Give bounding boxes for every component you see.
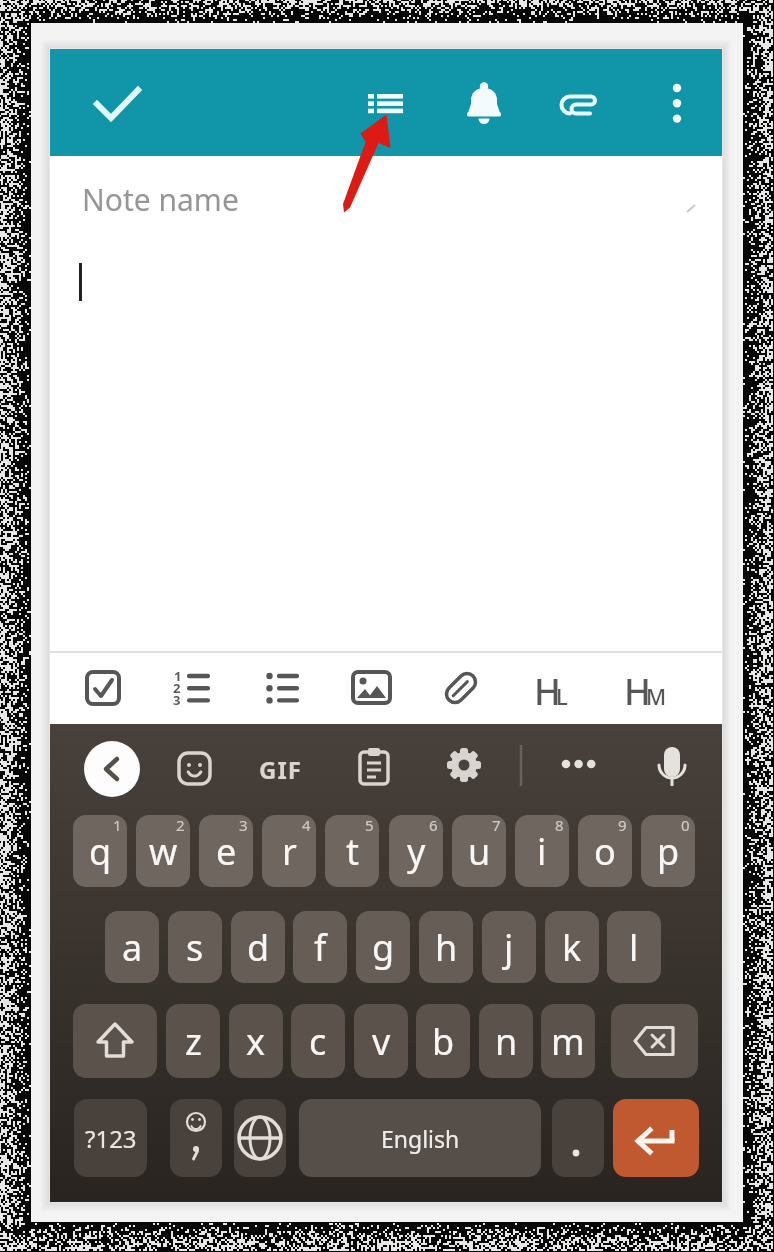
button[interactable]: [611, 1004, 698, 1078]
staticText: 2: [176, 815, 185, 835]
button[interactable]: [73, 1004, 157, 1078]
staticText: H: [534, 667, 561, 716]
staticText: f: [314, 923, 327, 972]
staticText: r: [282, 827, 297, 876]
staticText: h: [435, 923, 458, 972]
staticText: 3: [239, 815, 248, 835]
button[interactable]: w: [136, 815, 190, 887]
button[interactable]: [73, 657, 133, 717]
button[interactable]: j: [482, 911, 536, 983]
button[interactable]: a: [105, 911, 159, 983]
button[interactable]: z: [166, 1004, 220, 1078]
button[interactable]: x: [229, 1004, 283, 1078]
button[interactable]: [253, 740, 309, 796]
staticText: 6: [429, 815, 438, 835]
staticText: p: [657, 827, 680, 876]
staticText: 2: [173, 679, 181, 697]
button[interactable]: [90, 77, 146, 133]
button[interactable]: [644, 740, 700, 796]
button[interactable]: c: [291, 1004, 345, 1078]
button[interactable]: [431, 657, 491, 717]
staticText: s: [186, 923, 204, 972]
staticText: y: [407, 827, 426, 876]
button[interactable]: v: [354, 1004, 408, 1078]
button[interactable]: b: [416, 1004, 470, 1078]
staticText: k: [562, 923, 582, 972]
staticText: g: [372, 923, 395, 972]
button[interactable]: [456, 76, 512, 132]
staticText: ?123: [85, 1122, 137, 1155]
staticText: x: [246, 1017, 266, 1066]
staticText: 0: [681, 815, 690, 835]
button[interactable]: o: [578, 815, 632, 887]
staticText: v: [372, 1017, 391, 1066]
button[interactable]: k: [545, 911, 599, 983]
button[interactable]: [84, 741, 140, 797]
staticText: u: [468, 827, 491, 876]
staticText: e: [216, 827, 237, 876]
staticText: 1: [113, 815, 122, 835]
button[interactable]: m: [541, 1004, 595, 1078]
button[interactable]: l: [607, 911, 661, 983]
button[interactable]: g: [356, 911, 410, 983]
staticText: i: [537, 827, 547, 876]
button[interactable]: n: [479, 1004, 533, 1078]
staticText: H: [624, 667, 651, 716]
staticText: l: [629, 923, 639, 972]
button[interactable]: f: [293, 911, 347, 983]
button[interactable]: [170, 1099, 222, 1177]
staticText: 5: [365, 815, 374, 835]
button[interactable]: y: [389, 815, 443, 887]
button[interactable]: e: [199, 815, 253, 887]
button[interactable]: [520, 657, 580, 717]
button[interactable]: [552, 1099, 604, 1177]
staticText: q: [89, 827, 112, 876]
button[interactable]: [166, 740, 222, 796]
staticText: 1: [174, 667, 182, 685]
staticText: a: [122, 923, 143, 972]
staticText: English: [381, 1123, 460, 1154]
staticText: 3: [173, 691, 181, 709]
button[interactable]: [234, 1099, 286, 1177]
button[interactable]: [553, 76, 609, 132]
button[interactable]: ?123: [74, 1099, 147, 1177]
staticText: 8: [555, 815, 564, 835]
staticText: Note name: [82, 179, 239, 220]
button[interactable]: [252, 657, 312, 717]
staticText: m: [551, 1017, 585, 1066]
staticText: b: [432, 1017, 455, 1066]
button[interactable]: [341, 657, 401, 717]
button[interactable]: [551, 740, 607, 796]
button[interactable]: h: [419, 911, 473, 983]
button[interactable]: [162, 657, 222, 717]
button[interactable]: [346, 740, 402, 796]
button[interactable]: s: [168, 911, 222, 983]
staticText: o: [594, 827, 616, 876]
button[interactable]: [612, 657, 672, 717]
button[interactable]: t: [325, 815, 379, 887]
staticText: L: [556, 681, 568, 711]
staticText: n: [495, 1017, 518, 1066]
staticText: 9: [618, 815, 627, 835]
staticText: GIF: [259, 753, 302, 786]
staticText: t: [346, 827, 359, 876]
staticText: c: [309, 1017, 327, 1066]
button[interactable]: [613, 1099, 699, 1177]
staticText: z: [185, 1017, 202, 1066]
staticText: 7: [492, 815, 501, 835]
staticText: M: [646, 681, 667, 711]
button[interactable]: English: [299, 1099, 541, 1177]
button[interactable]: q: [73, 815, 127, 887]
button[interactable]: d: [231, 911, 285, 983]
staticText: 4: [302, 815, 311, 835]
button[interactable]: i: [515, 815, 569, 887]
staticText: d: [247, 923, 270, 972]
button[interactable]: [357, 76, 413, 132]
button[interactable]: [649, 76, 705, 132]
button[interactable]: p: [641, 815, 695, 887]
staticText: j: [504, 923, 514, 972]
button[interactable]: r: [262, 815, 316, 887]
staticText: w: [149, 827, 178, 876]
button[interactable]: u: [452, 815, 506, 887]
button[interactable]: [436, 740, 492, 796]
